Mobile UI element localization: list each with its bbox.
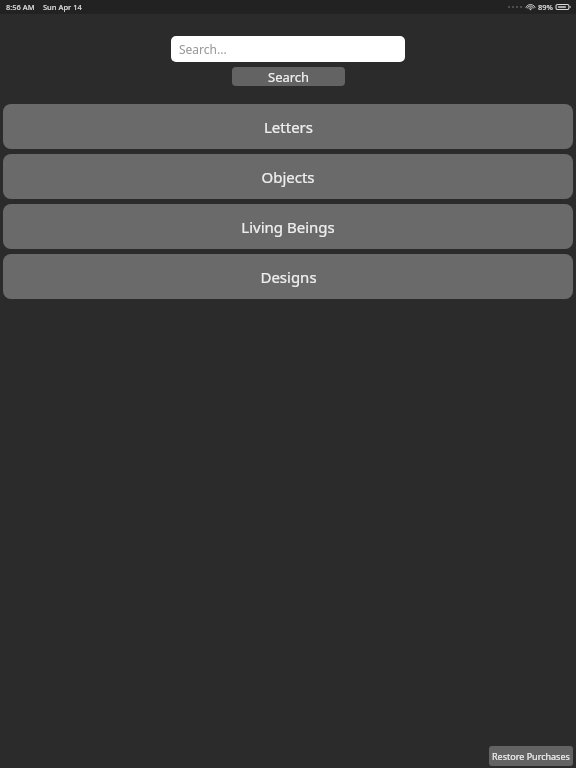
button[interactable]: Search... xyxy=(171,36,405,62)
staticText: Sun Apr 14 xyxy=(43,2,82,12)
button[interactable]: Living Beings xyxy=(3,204,573,249)
staticText: 8:56 AM xyxy=(6,2,35,12)
button[interactable]: Restore Purchases xyxy=(489,746,573,766)
staticText: Search xyxy=(268,68,310,86)
staticText: Designs xyxy=(260,267,317,287)
staticText: 89% xyxy=(538,2,553,12)
button[interactable]: Objects xyxy=(3,154,573,199)
staticText: Letters xyxy=(264,117,313,137)
button[interactable]: Designs xyxy=(3,254,573,299)
staticText: Objects xyxy=(261,167,315,187)
staticText: Search... xyxy=(179,41,227,57)
staticText: Living Beings xyxy=(241,217,335,237)
button[interactable]: Search xyxy=(232,67,345,86)
button[interactable]: Letters xyxy=(3,104,573,149)
staticText: Restore Purchases xyxy=(492,750,570,762)
